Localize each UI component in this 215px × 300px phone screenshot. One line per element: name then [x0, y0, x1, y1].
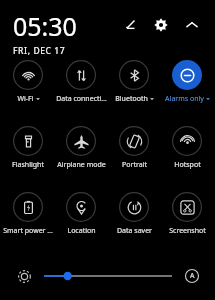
- staticText: Wi-Fi: [17, 94, 34, 104]
- button[interactable]: Collapse: [179, 12, 205, 38]
- staticText: Data connecti…: [56, 94, 107, 104]
- staticText: Bluetooth: [115, 94, 148, 104]
- button[interactable]: Auto brightness: [182, 266, 202, 286]
- button[interactable]: [44, 269, 172, 283]
- button[interactable]: Wi-Fi: [2, 60, 54, 104]
- button[interactable]: Portrait: [108, 126, 160, 170]
- staticText: 05:30: [13, 9, 77, 43]
- button[interactable]: Location: [55, 192, 107, 236]
- button[interactable]: Smart power …: [2, 192, 54, 236]
- staticText: Flashlight: [12, 160, 44, 170]
- button[interactable]: Alarms only: [161, 60, 213, 104]
- button[interactable]: Screenshot: [161, 192, 213, 236]
- staticText: A: [190, 271, 195, 281]
- button[interactable]: Data saver: [108, 192, 160, 236]
- staticText: Screenshot: [169, 226, 206, 236]
- staticText: Airplane mode: [57, 160, 106, 170]
- button[interactable]: Bluetooth: [108, 60, 160, 104]
- button[interactable]: Brightness: [13, 265, 35, 287]
- button[interactable]: Edit: [117, 12, 143, 38]
- staticText: Hotspot: [174, 160, 201, 170]
- staticText: FRI, DEC 17: [13, 45, 66, 57]
- staticText: Data saver: [117, 226, 152, 236]
- button[interactable]: Settings: [148, 12, 174, 38]
- button[interactable]: Hotspot: [161, 126, 213, 170]
- button[interactable]: Data connecti…: [55, 60, 107, 104]
- button[interactable]: Airplane mode: [55, 126, 107, 170]
- staticText: Alarms only: [165, 94, 204, 104]
- staticText: Smart power …: [3, 226, 53, 236]
- staticText: Location: [67, 226, 96, 236]
- staticText: Portrait: [122, 160, 147, 170]
- button[interactable]: Flashlight: [2, 126, 54, 170]
